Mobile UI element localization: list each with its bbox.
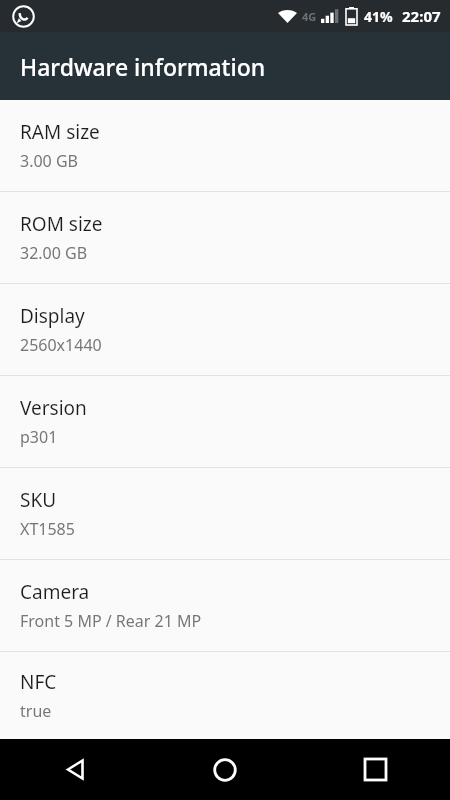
button[interactable]: Display [0, 284, 450, 375]
staticText: RAM size [20, 119, 100, 145]
staticText: 3.00 GB [20, 150, 78, 172]
staticText: 32.00 GB [20, 242, 88, 264]
button[interactable]: ROM size [0, 192, 450, 283]
staticText: NFC [20, 669, 57, 695]
button[interactable]: Home [150, 739, 300, 800]
button[interactable]: Version [0, 376, 450, 467]
staticText: ROM size [20, 211, 103, 237]
staticText: Version [20, 395, 87, 421]
staticText: 22:07 [402, 6, 441, 26]
staticText: SKU [20, 487, 57, 513]
staticText: Camera [20, 579, 90, 605]
button[interactable]: RAM size [0, 100, 450, 191]
staticText: p301 [20, 426, 58, 448]
staticText: Front 5 MP / Rear 21 MP [20, 610, 202, 632]
other: WhatsApp notification [12, 5, 35, 28]
staticText: Hardware information [20, 51, 266, 82]
button[interactable]: NFC [0, 652, 450, 739]
staticText: 2560x1440 [20, 334, 102, 356]
button[interactable]: Back [0, 739, 150, 800]
staticText: 4G [302, 9, 317, 24]
staticText: 41% [364, 7, 393, 26]
staticText: XT1585 [20, 518, 75, 540]
button[interactable]: Camera [0, 560, 450, 651]
staticText: Display [20, 303, 85, 329]
staticText: true [20, 700, 52, 722]
button[interactable]: Recent apps [300, 739, 450, 800]
button[interactable]: SKU [0, 468, 450, 559]
